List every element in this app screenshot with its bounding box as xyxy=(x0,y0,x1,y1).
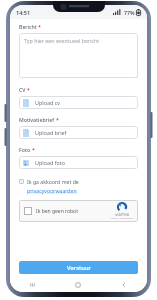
button[interactable]: Recent apps xyxy=(10,278,55,292)
button[interactable]: Verstuur xyxy=(19,261,138,274)
staticText: 14:51 xyxy=(16,9,31,16)
staticText: Bericht xyxy=(19,23,37,30)
staticText: Upload foto xyxy=(35,159,65,166)
staticText: CV xyxy=(19,86,26,93)
staticText: Upload brief xyxy=(35,129,67,136)
staticText: 77% xyxy=(124,9,135,16)
staticText: Motivatiebrief xyxy=(19,116,55,123)
staticText: reCAPTCHA xyxy=(115,213,129,217)
staticText: * xyxy=(32,146,35,153)
staticText: * xyxy=(27,86,30,93)
button[interactable]: Ik ben geen robot xyxy=(19,200,138,222)
button[interactable]: Upload cv xyxy=(19,96,138,109)
staticText: Typ hier een eventueel bericht xyxy=(24,37,100,44)
button[interactable]: Back xyxy=(101,278,147,292)
staticText: Ik ga akkoord met de xyxy=(27,178,79,185)
button[interactable]: Ik ga akkoord met de xyxy=(19,178,138,194)
button[interactable]: Upload foto xyxy=(19,156,138,169)
staticText: * xyxy=(38,23,41,30)
staticText: Foto xyxy=(19,146,31,153)
button[interactable]: Typ hier een eventueel bericht xyxy=(19,33,138,78)
staticText: Ik ben geen robot xyxy=(36,208,78,215)
staticText: Upload cv xyxy=(35,99,60,106)
staticText: Privacy - Voorwaarden xyxy=(111,217,133,220)
button[interactable]: Upload brief xyxy=(19,126,138,139)
staticText: privacyvoorwaarden xyxy=(27,187,77,194)
button[interactable]: Home xyxy=(55,278,101,292)
staticText: * xyxy=(56,116,59,123)
staticText: Verstuur xyxy=(67,264,91,272)
